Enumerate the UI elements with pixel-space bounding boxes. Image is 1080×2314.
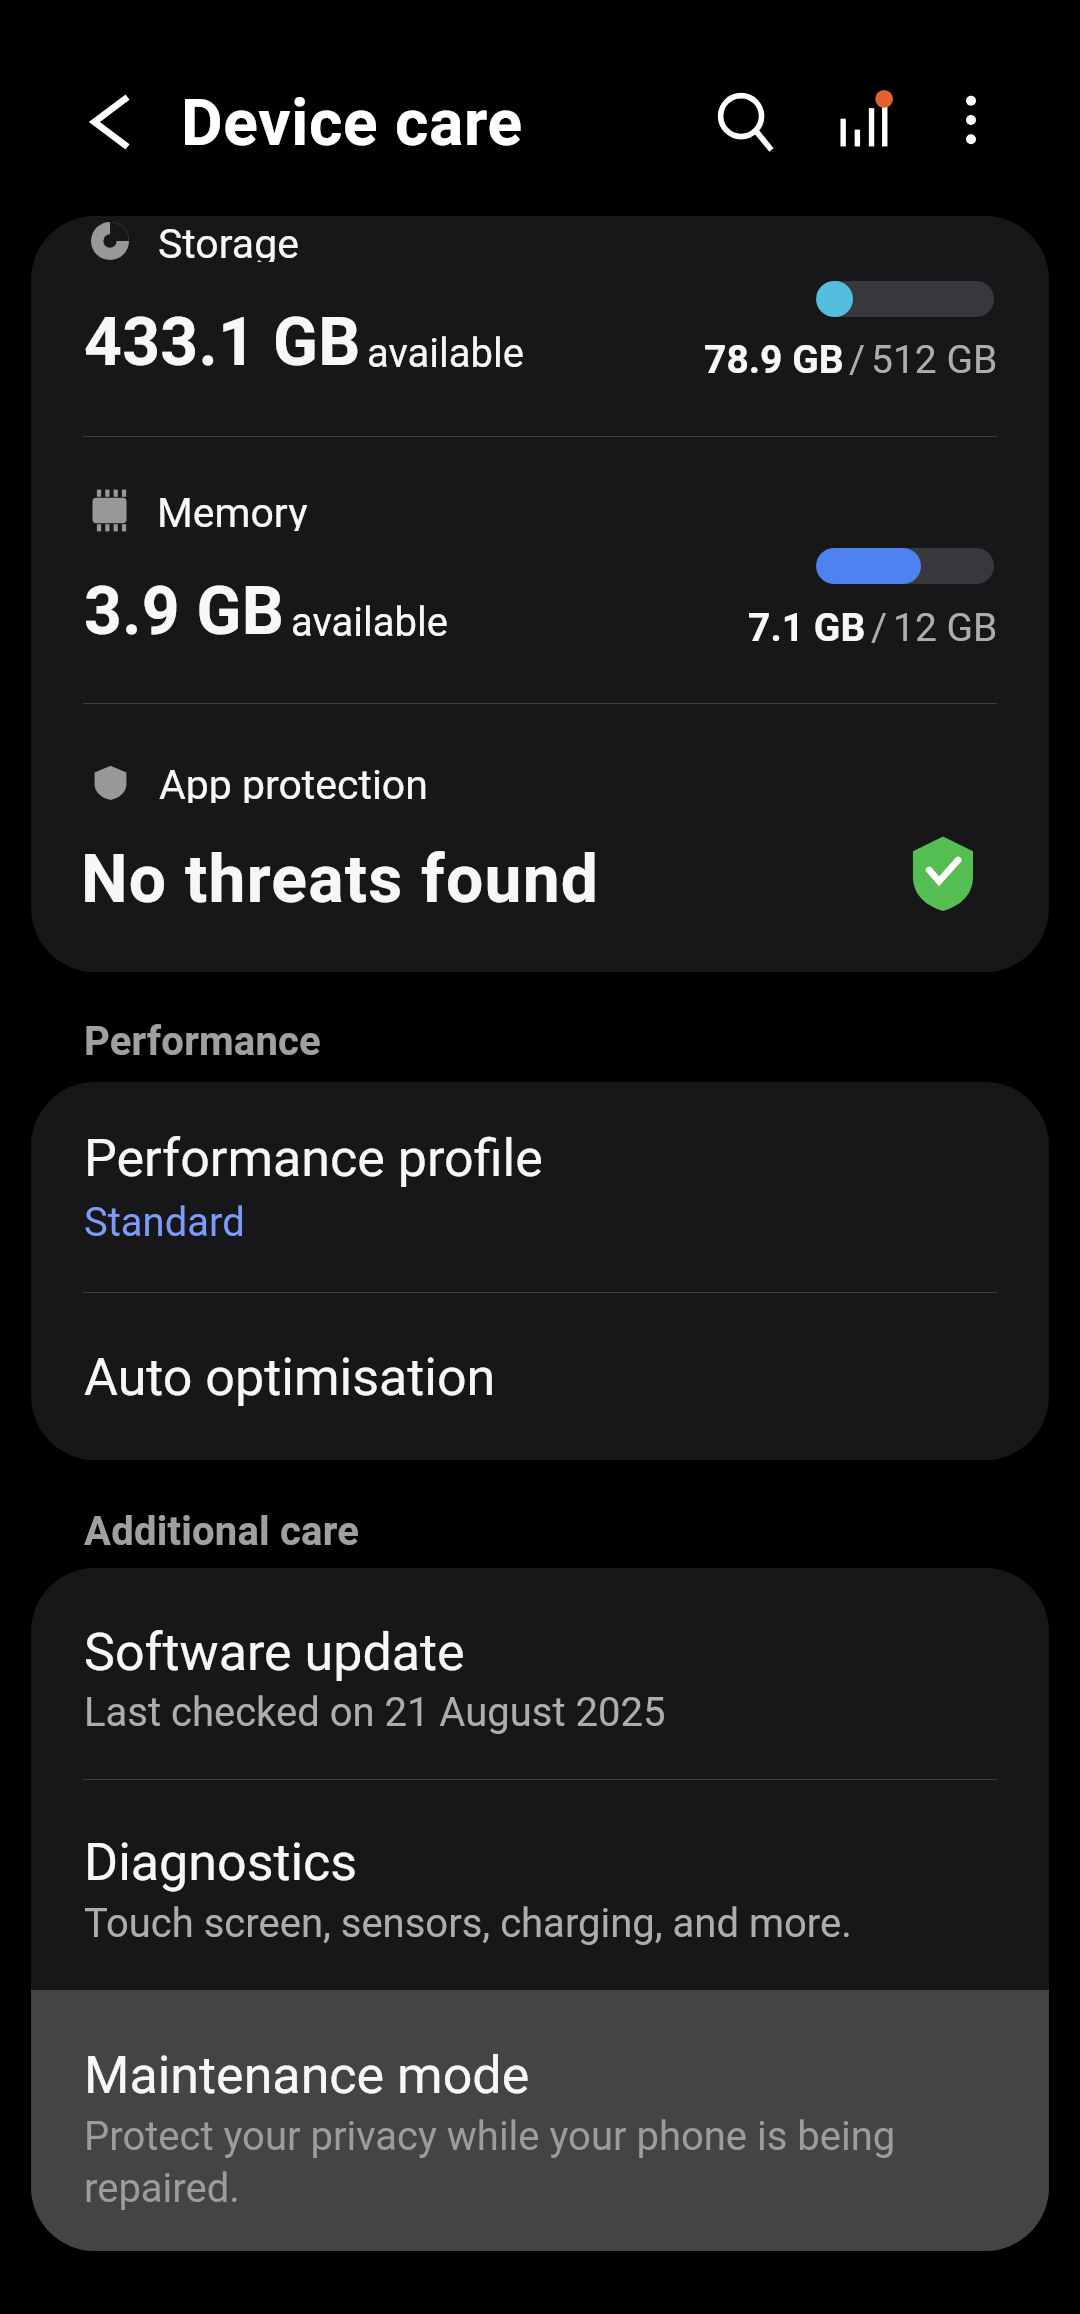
staticText: / <box>871 605 888 651</box>
button[interactable]: Performance profile <box>31 1082 1049 1292</box>
staticText: Memory <box>157 489 308 531</box>
staticText: available <box>367 330 524 377</box>
staticText: Protect your privacy while your phone is… <box>84 2113 896 2212</box>
button[interactable]: Auto optimisation <box>31 1293 1049 1460</box>
staticText: / <box>849 337 866 383</box>
button[interactable]: More options <box>917 66 1025 174</box>
staticText: available <box>291 599 448 646</box>
staticText: Performance profile <box>84 1128 543 1189</box>
button[interactable]: Diagnostics <box>31 1780 1049 1990</box>
staticText: 12 GB <box>893 605 998 651</box>
staticText: Touch screen, sensors, charging, and mor… <box>84 1900 852 1947</box>
button[interactable]: Memory <box>31 437 1049 703</box>
button[interactable]: App protection <box>31 704 1049 972</box>
button[interactable]: Usage statistics <box>806 69 914 177</box>
staticText: Storage <box>158 220 299 262</box>
staticText: 433.1 GB <box>84 304 361 381</box>
button[interactable]: Maintenance mode <box>31 1990 1049 2251</box>
staticText: Software update <box>84 1622 465 1683</box>
staticText: Auto optimisation <box>84 1347 496 1408</box>
button[interactable]: Search <box>697 73 805 181</box>
staticText: Last checked on 21 August 2025 <box>84 1689 666 1736</box>
staticText: Performance <box>84 1018 321 1065</box>
staticText: 512 GB <box>871 337 998 383</box>
staticText: 7.1 GB <box>748 605 866 651</box>
button[interactable]: Software update <box>31 1568 1049 1779</box>
button[interactable]: Storage <box>31 216 1049 436</box>
staticText: Standard <box>84 1199 245 1246</box>
staticText: No threats found <box>81 841 600 918</box>
button[interactable]: Back <box>60 69 165 174</box>
staticText: Maintenance mode <box>84 2045 530 2106</box>
staticText: 78.9 GB <box>704 337 844 383</box>
staticText: Device care <box>181 86 523 161</box>
staticText: App protection <box>159 761 428 803</box>
staticText: 3.9 GB <box>84 573 285 650</box>
staticText: Additional care <box>84 1508 359 1555</box>
staticText: Diagnostics <box>84 1832 358 1893</box>
